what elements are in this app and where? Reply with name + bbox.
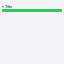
button[interactable] [2, 9, 62, 12]
staticText: Title [5, 4, 12, 9]
